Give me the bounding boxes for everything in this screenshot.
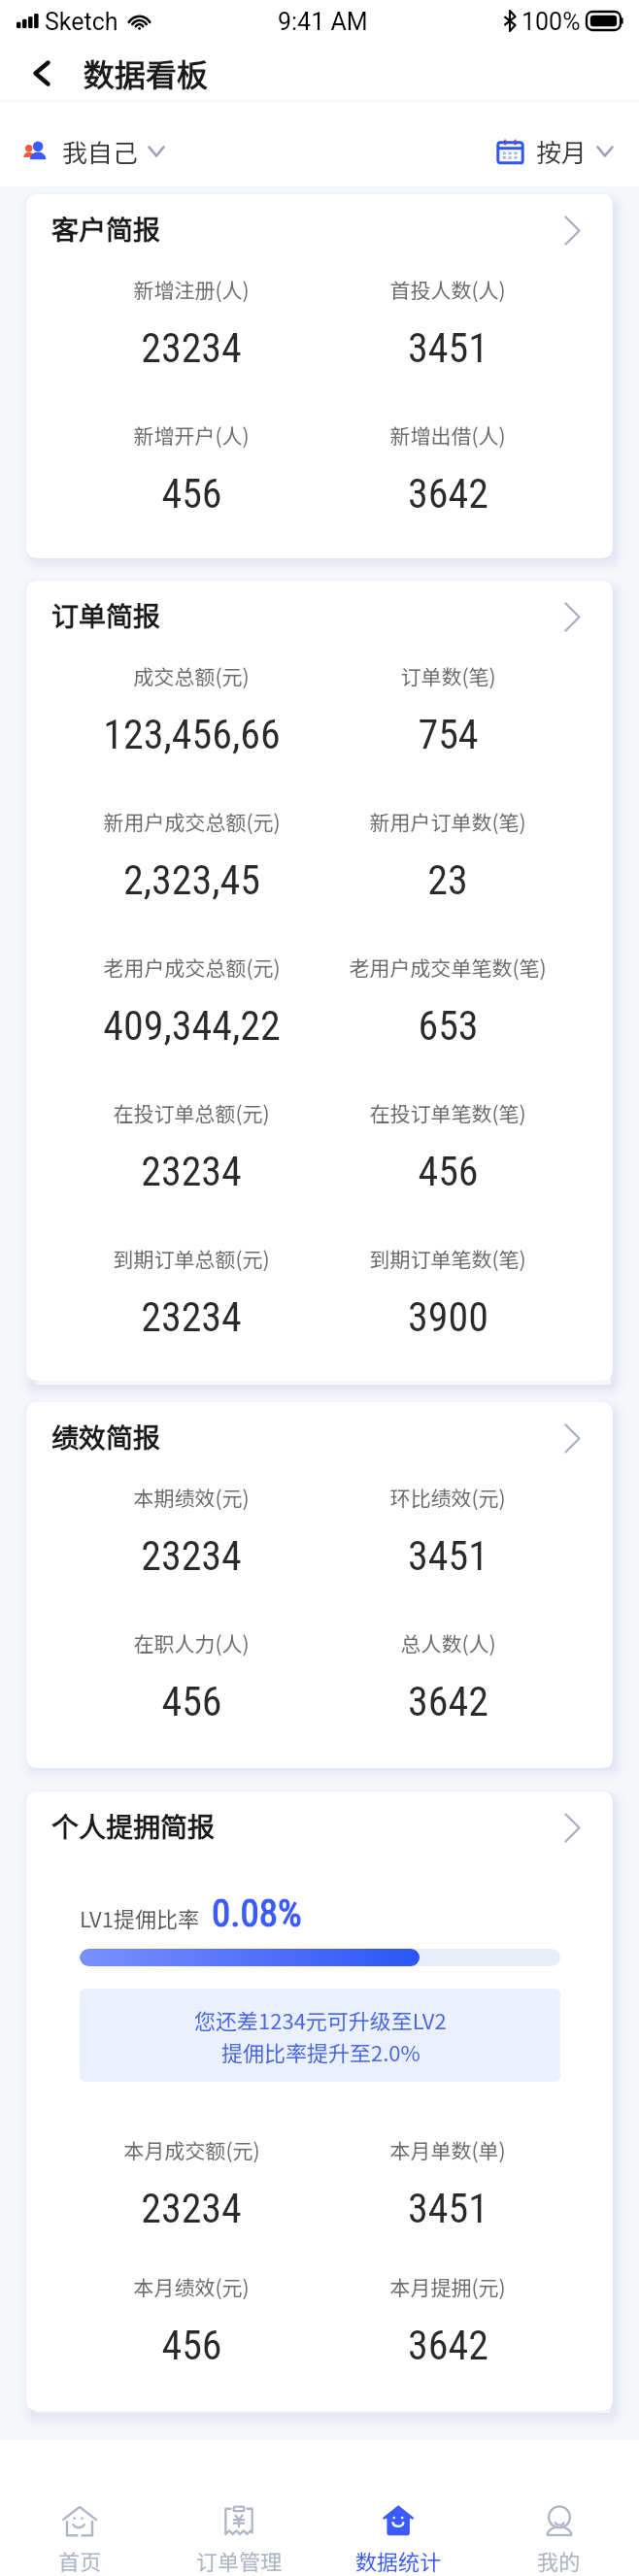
staticText: Sketch [45, 8, 118, 33]
staticText: 在投订单笔数(笔) [369, 1098, 526, 1127]
staticText: 3451 [408, 324, 488, 372]
staticText: 成交总额(元) [133, 661, 250, 690]
staticText: 2,323,45 [123, 856, 260, 904]
staticText: 本月成交额(元) [123, 2135, 260, 2164]
staticText: 本月绩效(元) [133, 2272, 250, 2301]
button[interactable]: 返回 [0, 44, 84, 102]
staticText: 订单简报 [51, 595, 161, 635]
staticText: 到期订单总额(元) [113, 1244, 270, 1273]
staticText: LV1提佣比率 [80, 1902, 199, 1933]
staticText: 客户简报 [51, 209, 161, 249]
button[interactable]: 我自己 [23, 133, 165, 170]
staticText: 首页 [58, 2545, 102, 2576]
staticText: 老用户成交总额(元) [103, 953, 281, 982]
button[interactable]: 客户简报 [26, 194, 613, 558]
staticText: 老用户成交单笔数(笔) [349, 953, 547, 982]
staticText: 123,456,66 [103, 711, 281, 758]
staticText: 数据看板 [84, 50, 209, 95]
button[interactable]: 数据统计 [319, 2440, 479, 2576]
staticText: 23234 [141, 324, 242, 372]
staticText: 409,344,22 [103, 1002, 281, 1050]
staticText: 首投人数(人) [389, 275, 506, 304]
button[interactable]: 个人提拥简报 [26, 1791, 613, 2411]
staticText: 456 [161, 470, 222, 518]
staticText: 23234 [141, 1148, 242, 1195]
staticText: 3451 [408, 2185, 488, 2232]
staticText: 456 [161, 1678, 222, 1725]
staticText: 到期订单笔数(笔) [369, 1244, 526, 1273]
staticText: 按月 [536, 133, 588, 170]
staticText: 23234 [141, 1293, 242, 1341]
staticText: 数据统计 [355, 2545, 442, 2576]
button[interactable]: 绩效简报 [26, 1402, 613, 1768]
staticText: 新增开户(人) [133, 420, 250, 450]
staticText: 提佣比率提升至2.0% [221, 2036, 420, 2067]
staticText: 本期绩效(元) [133, 1483, 250, 1512]
staticText: 3642 [408, 1678, 488, 1725]
button[interactable]: 按月 [497, 133, 614, 170]
staticText: 23234 [141, 2185, 242, 2232]
staticText: 绩效简报 [51, 1417, 161, 1456]
staticText: 3642 [408, 2322, 488, 2369]
staticText: 0.08% [212, 1891, 302, 1936]
staticText: 新增出借(人) [389, 420, 506, 450]
staticText: 订单管理 [196, 2545, 283, 2576]
staticText: 3451 [408, 1532, 488, 1580]
staticText: 本月提拥(元) [389, 2272, 506, 2301]
staticText: 754 [418, 711, 479, 758]
staticText: 23234 [141, 1532, 242, 1580]
staticText: 在职人力(人) [133, 1628, 250, 1657]
button[interactable]: 订单简报 [26, 581, 613, 1381]
staticText: 总人数(人) [400, 1628, 496, 1657]
button[interactable]: 我的 [479, 2440, 639, 2576]
button[interactable]: 订单管理 [159, 2440, 319, 2576]
staticText: 9:41 AM [278, 8, 368, 33]
staticText: 本月单数(单) [389, 2135, 506, 2164]
staticText: 100% [521, 8, 581, 33]
staticText: 环比绩效(元) [389, 1483, 506, 1512]
staticText: 456 [418, 1148, 479, 1195]
staticText: 个人提拥简报 [51, 1806, 216, 1846]
staticText: 新用户成交总额(元) [103, 807, 281, 836]
staticText: 653 [418, 1002, 479, 1050]
staticText: 3900 [408, 1293, 488, 1341]
staticText: 我的 [537, 2545, 581, 2576]
staticText: 新增注册(人) [133, 275, 250, 304]
staticText: 订单数(笔) [400, 661, 496, 690]
staticText: 23 [427, 856, 468, 904]
staticText: 456 [161, 2322, 222, 2369]
staticText: 我自己 [62, 133, 139, 170]
staticText: 在投订单总额(元) [113, 1098, 270, 1127]
button[interactable]: 首页 [0, 2440, 159, 2576]
staticText: 3642 [408, 470, 488, 518]
staticText: 新用户订单数(笔) [369, 807, 526, 836]
staticText: 您还差1234元可升级至LV2 [194, 2004, 447, 2035]
